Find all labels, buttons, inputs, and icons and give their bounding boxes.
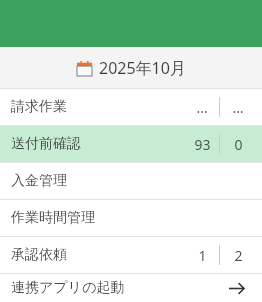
staticText: 2	[234, 246, 243, 265]
staticText: 請求作業	[11, 98, 67, 116]
staticText: …	[232, 98, 244, 117]
staticText: 連携アプリの起動	[11, 279, 125, 297]
button[interactable]: 連携アプリの起動	[0, 274, 262, 302]
staticText: 承認依頼	[11, 246, 67, 264]
button[interactable]: 送付前確認	[0, 126, 262, 162]
button[interactable]: 2025年10月	[0, 47, 262, 88]
staticText: …	[196, 98, 208, 117]
button[interactable]: 承認依頼	[0, 237, 262, 273]
staticText: 送付前確認	[11, 135, 81, 153]
button[interactable]: 作業時間管理	[0, 200, 262, 236]
button[interactable]: 入金管理	[0, 163, 262, 199]
staticText: 0	[234, 135, 243, 154]
staticText: 2025年10月	[99, 57, 186, 79]
staticText: 1	[198, 246, 207, 265]
staticText: 93	[194, 135, 211, 154]
button[interactable]: 請求作業	[0, 89, 262, 125]
staticText: 作業時間管理	[11, 209, 95, 227]
staticText: 入金管理	[11, 172, 67, 190]
other: 連携アプリの起動	[229, 282, 244, 295]
